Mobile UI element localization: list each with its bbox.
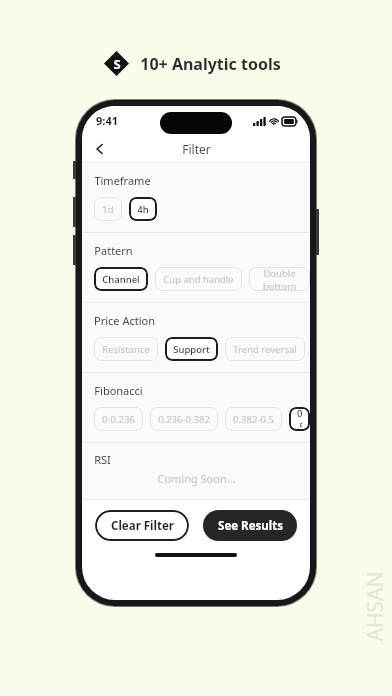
button[interactable]: Support bbox=[165, 337, 218, 361]
staticText: See Results bbox=[218, 518, 283, 534]
button[interactable]: Cup and handle bbox=[155, 267, 242, 291]
staticText: 4h bbox=[137, 203, 149, 216]
button[interactable]: 0.236-0.382 bbox=[150, 407, 218, 431]
button[interactable]: Back bbox=[88, 137, 112, 161]
staticText: Pattern bbox=[94, 243, 133, 258]
button[interactable]: 4h bbox=[129, 197, 157, 221]
staticText: Fibonacci bbox=[94, 383, 143, 398]
staticText: Channel bbox=[102, 273, 140, 286]
staticText: 0.382-0.5 bbox=[233, 413, 274, 426]
button[interactable]: Channel bbox=[94, 267, 148, 291]
button[interactable]: Clear Filter bbox=[95, 510, 189, 541]
staticText: Timeframe bbox=[94, 173, 151, 188]
staticText: AHSAN bbox=[360, 571, 389, 641]
button[interactable]: See Results bbox=[203, 510, 297, 541]
staticText: 0.5-0.618 bbox=[297, 407, 302, 431]
button[interactable]: 0.382-0.5 bbox=[225, 407, 282, 431]
staticText: 1d bbox=[102, 203, 114, 216]
button[interactable]: 0-0.236 bbox=[94, 407, 143, 431]
staticText: Support bbox=[173, 343, 210, 356]
button[interactable]: 1d bbox=[94, 197, 122, 221]
button[interactable]: Trend reversal bbox=[225, 337, 305, 361]
staticText: S bbox=[113, 55, 121, 73]
staticText: Cup and handle bbox=[163, 273, 234, 286]
staticText: Clear Filter bbox=[111, 518, 174, 534]
button[interactable]: Resistance bbox=[94, 337, 158, 361]
staticText: Double bottom bbox=[257, 267, 302, 291]
staticText: 10+ Analytic tools bbox=[140, 53, 281, 75]
staticText: 9:41 bbox=[96, 113, 118, 128]
staticText: Price Action bbox=[94, 313, 155, 328]
button[interactable]: 0.5-0.618 bbox=[289, 407, 310, 431]
staticText: Resistance bbox=[102, 343, 150, 356]
staticText: RSI bbox=[94, 452, 111, 467]
staticText: Filter bbox=[182, 141, 211, 157]
staticText: Trend reversal bbox=[233, 343, 297, 356]
staticText: 0.236-0.382 bbox=[158, 413, 210, 426]
button[interactable]: Double bottom bbox=[249, 267, 310, 291]
staticText: Coming Soon... bbox=[157, 471, 236, 486]
staticText: 0-0.236 bbox=[102, 413, 135, 426]
